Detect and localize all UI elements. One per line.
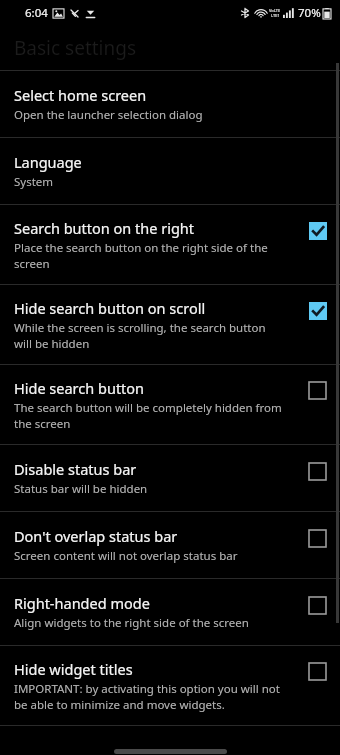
button[interactable]: Right-handed mode <box>0 579 340 645</box>
staticText: Open the launcher selection dialog <box>14 107 203 123</box>
button[interactable]: Hide search button on scroll <box>0 285 340 364</box>
button[interactable]: Don't overlap status bar <box>0 512 340 578</box>
button[interactable]: Hide widget titles <box>308 662 327 681</box>
button[interactable]: Select home screen <box>0 71 340 137</box>
staticText: Place the search button on the right sid… <box>14 240 268 271</box>
staticText: Align widgets to the right side of the s… <box>14 615 249 631</box>
button[interactable]: Hide search button on scroll <box>308 301 327 320</box>
staticText: Hide search button on scroll <box>14 298 206 318</box>
button[interactable]: Disable status bar <box>0 445 340 511</box>
button[interactable]: Save position <box>0 726 340 755</box>
staticText: Status bar will be hidden <box>14 481 148 497</box>
staticText: Screen content will not overlap status b… <box>14 548 238 564</box>
button[interactable]: Don't overlap status bar <box>308 529 327 548</box>
staticText: Basic settings <box>14 35 137 61</box>
staticText: 6:04 <box>25 5 48 21</box>
staticText: Right-handed mode <box>14 593 150 613</box>
staticText: Hide search button <box>14 378 145 398</box>
staticText: LTE1 <box>271 13 280 18</box>
button[interactable]: Hide search button <box>0 365 340 444</box>
button[interactable]: Language <box>0 138 340 204</box>
staticText: IMPORTANT: by activating this option you… <box>14 681 280 712</box>
staticText: Select home screen <box>14 85 147 105</box>
button[interactable]: Search button on the right <box>308 221 327 240</box>
staticText: 70% <box>298 5 321 21</box>
button[interactable]: Disable status bar <box>308 462 327 481</box>
staticText: Hide widget titles <box>14 659 133 679</box>
staticText: VoLTE <box>269 8 281 13</box>
staticText: Search button on the right <box>14 218 195 238</box>
staticText: Language <box>14 152 82 172</box>
button[interactable]: Hide search button <box>308 381 327 400</box>
staticText: Disable status bar <box>14 459 137 479</box>
button[interactable]: Search button on the right <box>0 205 340 284</box>
staticText: While the screen is scrolling, the searc… <box>14 320 266 351</box>
staticText: The search button will be completely hid… <box>14 400 282 431</box>
staticText: System <box>14 174 54 190</box>
button[interactable]: Hide widget titles <box>0 646 340 725</box>
staticText: Don't overlap status bar <box>14 526 178 546</box>
button[interactable]: Right-handed mode <box>308 596 327 615</box>
